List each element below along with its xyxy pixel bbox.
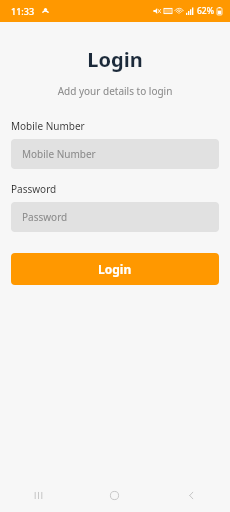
button[interactable]: Home <box>76 478 153 512</box>
button[interactable]: Mobile Number <box>11 139 219 169</box>
staticText: Password <box>11 182 57 196</box>
staticText: Password <box>22 210 68 224</box>
staticText: Login <box>0 46 230 73</box>
button[interactable]: Recents <box>0 478 76 512</box>
button[interactable]: Password <box>11 202 219 232</box>
staticText: Mobile Number <box>22 147 96 161</box>
staticText: Login <box>98 261 132 277</box>
staticText: Add your details to login <box>0 84 230 98</box>
button[interactable]: Login <box>11 253 219 285</box>
staticText: Mobile Number <box>11 119 85 133</box>
staticText: 11:33 <box>11 5 35 17</box>
staticText: 62% <box>197 5 214 17</box>
